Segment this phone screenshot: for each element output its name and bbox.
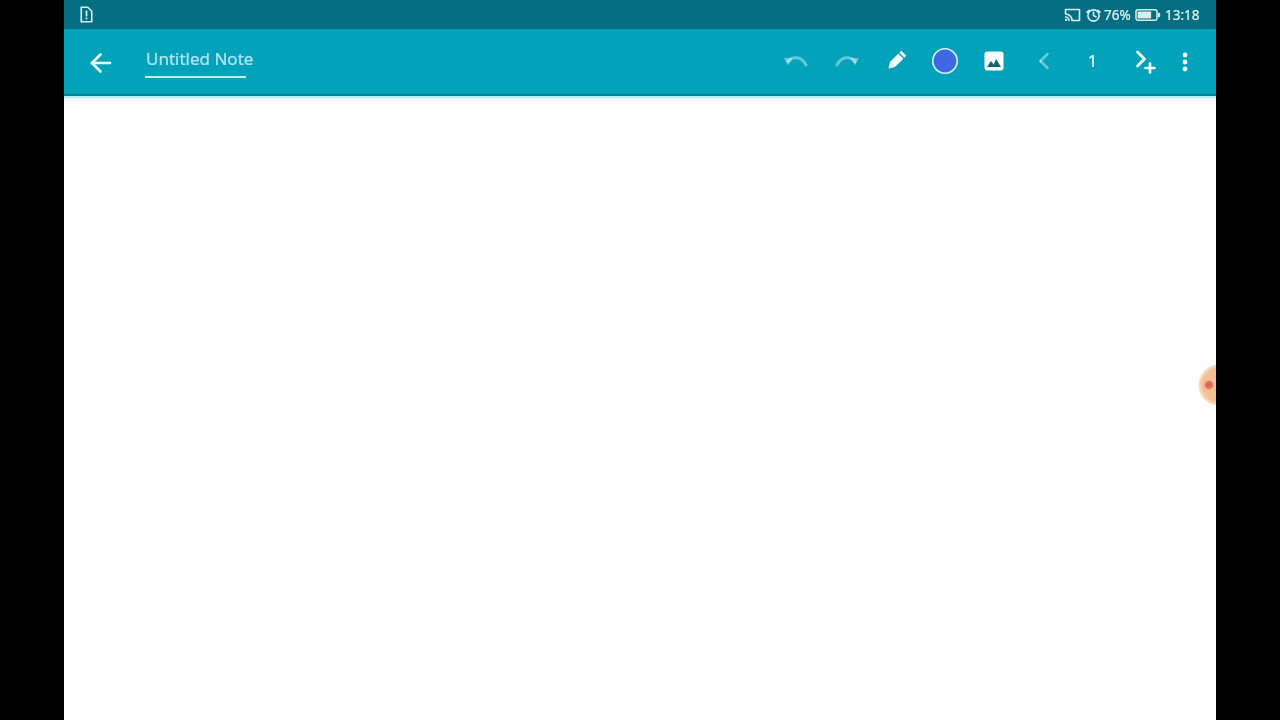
- staticText: 13:18: [1165, 6, 1200, 24]
- button[interactable]: [1120, 37, 1168, 85]
- button[interactable]: [970, 37, 1018, 85]
- button[interactable]: [1020, 37, 1068, 85]
- staticText: 76%: [1104, 6, 1131, 24]
- button[interactable]: [77, 39, 125, 87]
- staticText: 1: [1088, 50, 1098, 72]
- button[interactable]: Untitled Note: [142, 45, 322, 81]
- button[interactable]: [1196, 365, 1216, 405]
- button[interactable]: [822, 37, 870, 85]
- button[interactable]: [1161, 37, 1209, 85]
- button[interactable]: [921, 37, 969, 85]
- button[interactable]: [872, 37, 920, 85]
- button[interactable]: [773, 37, 821, 85]
- staticText: Untitled Note: [146, 47, 254, 70]
- button[interactable]: 1: [1069, 37, 1117, 85]
